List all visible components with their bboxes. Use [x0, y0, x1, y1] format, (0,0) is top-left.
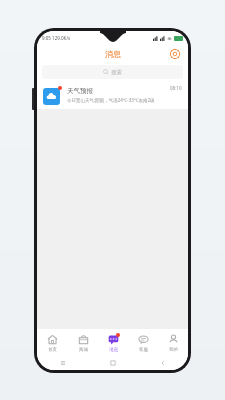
button[interactable]: 商城 [68, 329, 98, 356]
staticText: 今日景山天气:阴雨，气温24℃-33℃东南2级 [67, 97, 155, 103]
staticText: 客服 [139, 347, 148, 353]
staticText: 天气预报 [67, 87, 93, 95]
button[interactable]: 搜索 [42, 65, 183, 79]
button[interactable]: 天气预报 [37, 81, 188, 109]
staticText: 消息 [109, 347, 118, 353]
button[interactable]: Back [138, 356, 188, 370]
button[interactable]: 消息 [98, 329, 128, 356]
button[interactable]: Home [88, 356, 138, 370]
button[interactable]: 首页 [37, 329, 68, 356]
staticText: 商城 [79, 347, 88, 353]
staticText: 我的 [169, 347, 178, 353]
staticText: 9:05 129.0K/s [42, 35, 71, 41]
staticText: 08:10 [170, 85, 182, 91]
button[interactable]: Recents [37, 356, 88, 370]
button[interactable]: 我的 [158, 329, 188, 356]
staticText: 首页 [48, 347, 57, 353]
staticText: 消息 [105, 49, 121, 59]
button[interactable]: Settings [168, 47, 182, 61]
button[interactable]: 客服 [128, 329, 158, 356]
staticText: 搜索 [111, 69, 122, 76]
